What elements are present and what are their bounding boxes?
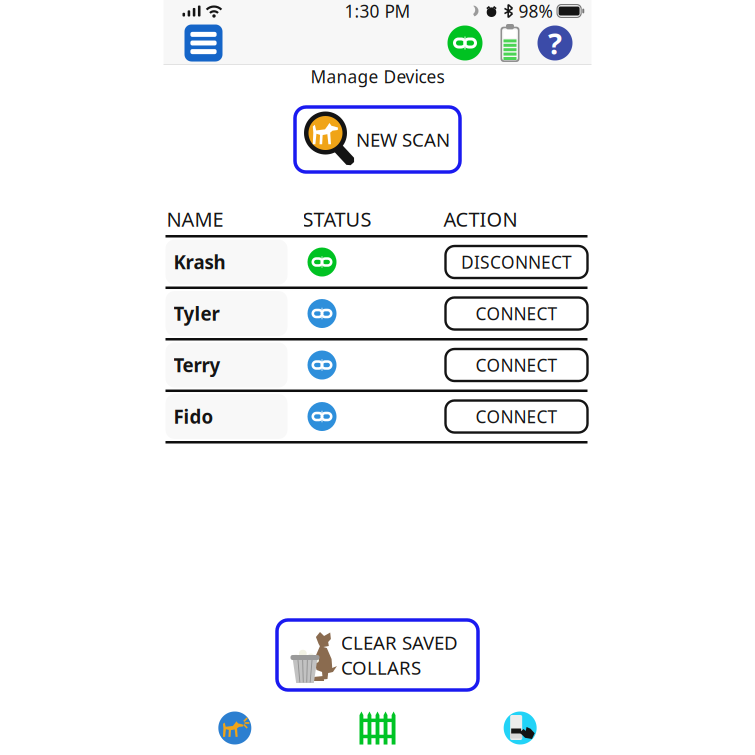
button[interactable]: CONNECT [445, 400, 587, 432]
button[interactable]: CONNECT [445, 297, 587, 329]
staticText: STATUS [302, 206, 371, 232]
staticText: Manage Devices [310, 65, 444, 88]
button[interactable]: Connection status [447, 25, 482, 60]
staticText: ? [548, 23, 562, 62]
staticText: CONNECT [475, 405, 557, 428]
staticText: ACTION [443, 206, 517, 232]
staticText: NEW SCAN [356, 127, 450, 152]
staticText: Krash [173, 250, 225, 274]
staticText: CONNECT [475, 353, 557, 376]
button[interactable]: Collars [218, 711, 251, 744]
staticText: DISCONNECT [461, 250, 572, 273]
staticText: 98% [518, 0, 552, 22]
button[interactable]: DISCONNECT [445, 246, 587, 278]
staticText: CLEAR SAVED COLLARS [341, 630, 458, 680]
staticText: 1:30 PM [344, 0, 410, 22]
button[interactable]: NEW SCAN [295, 107, 460, 172]
button[interactable]: Remote [504, 711, 537, 744]
button[interactable]: Fences [359, 711, 395, 744]
staticText: CONNECT [475, 302, 557, 325]
button[interactable]: Help [537, 25, 572, 60]
button[interactable]: CLEAR SAVED COLLARS [277, 620, 478, 690]
staticText: NAME [166, 206, 223, 232]
button[interactable]: Menu [184, 24, 222, 61]
button[interactable]: CONNECT [445, 349, 587, 381]
staticText: Terry [173, 353, 220, 377]
staticText: Tyler [173, 301, 219, 326]
button[interactable]: Battery level [482, 24, 537, 62]
staticText: Fido [173, 404, 213, 429]
